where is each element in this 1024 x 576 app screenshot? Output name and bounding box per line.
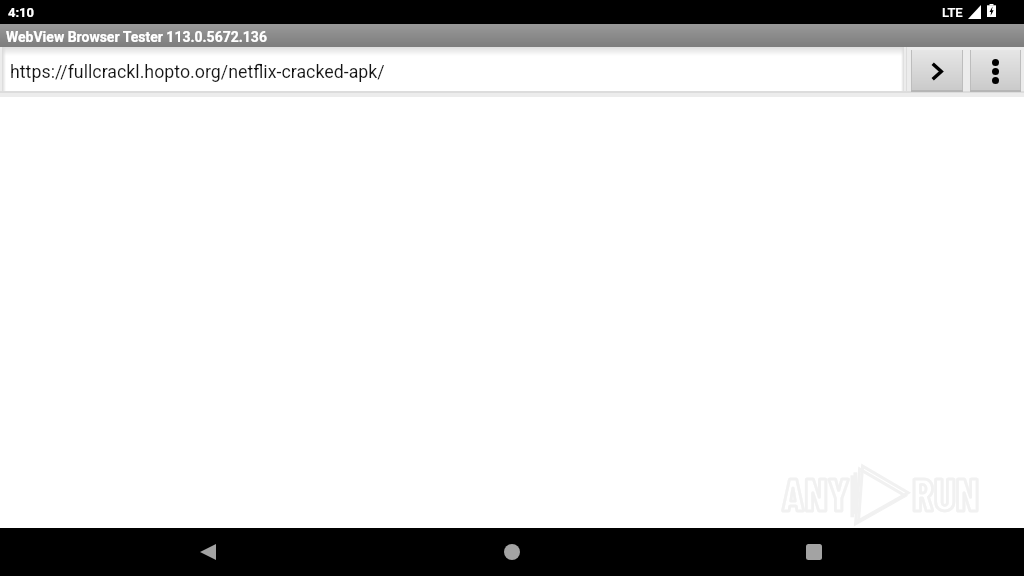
staticText: https://fullcrackl.hopto.org/netflix-cra… [10, 61, 385, 82]
button[interactable]: Recent apps [766, 528, 862, 576]
staticText: 4:10 [8, 5, 35, 20]
button[interactable]: Home [464, 528, 560, 576]
button[interactable]: Back [160, 528, 256, 576]
button[interactable]: https://fullcrackl.hopto.org/netflix-cra… [2, 47, 904, 92]
staticText: WebView Browser Tester 113.0.5672.136 [6, 29, 267, 45]
staticText: LTE [942, 5, 963, 20]
button[interactable]: Go [911, 50, 963, 92]
button[interactable]: More options [970, 50, 1021, 92]
